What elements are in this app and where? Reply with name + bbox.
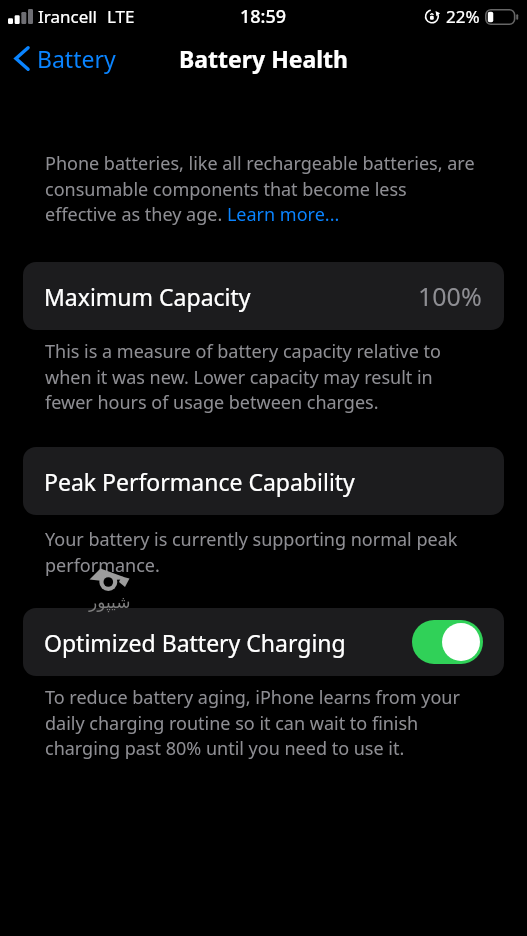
staticText: Optimized Battery Charging xyxy=(44,627,346,658)
staticText: This is a measure of battery capacity re… xyxy=(45,339,477,414)
staticText: Maximum Capacity xyxy=(44,281,251,312)
staticText: 18:59 xyxy=(240,4,287,29)
other: Cellular signal strength xyxy=(8,9,33,24)
staticText: Irancell xyxy=(38,5,98,28)
button[interactable]: Peak Performance Capability xyxy=(23,447,504,515)
button[interactable]: Maximum Capacity xyxy=(23,262,504,330)
staticText: LTE xyxy=(107,5,135,28)
other: Battery 22 percent xyxy=(485,9,519,25)
staticText: شیپور xyxy=(89,592,131,612)
button[interactable]: Optimized Battery Charging xyxy=(23,608,504,676)
staticText: Battery xyxy=(37,43,116,74)
staticText: 22% xyxy=(446,5,480,28)
staticText: 100% xyxy=(418,279,482,313)
button[interactable]: Back to Battery xyxy=(0,37,128,80)
staticText: Peak Performance Capability xyxy=(44,466,355,497)
staticText: To reduce battery aging, iPhone learns f… xyxy=(45,685,477,760)
button[interactable]: Optimized Battery Charging, on xyxy=(412,620,483,664)
button[interactable]: Phone batteries, like all rechargeable b… xyxy=(0,151,527,226)
staticText: Your battery is currently supporting nor… xyxy=(45,527,477,577)
staticText: Battery Health xyxy=(179,43,349,74)
other: Rotation lock xyxy=(425,9,440,24)
